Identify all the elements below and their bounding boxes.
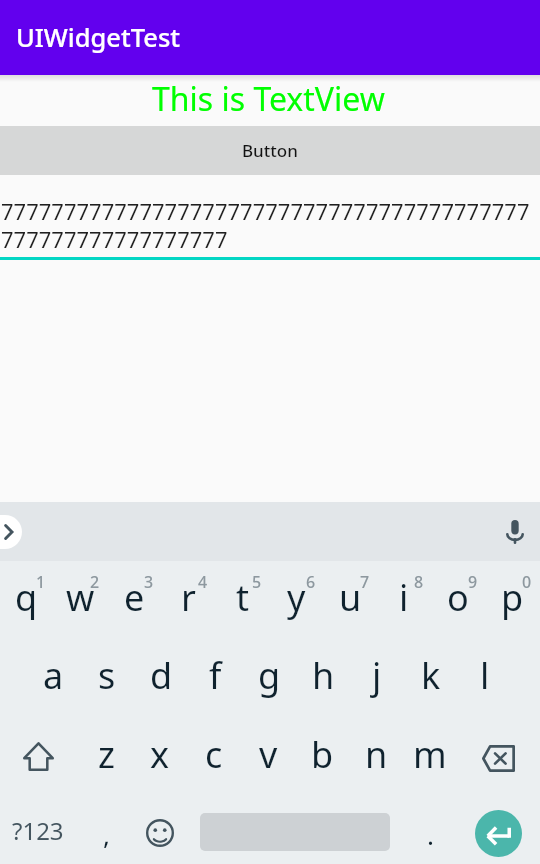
button[interactable]: 3 (108, 561, 162, 640)
staticText: h (312, 651, 335, 700)
button[interactable]: v (243, 720, 297, 800)
button[interactable]: g (243, 640, 297, 720)
staticText: t (236, 573, 249, 622)
staticText: j (372, 651, 382, 700)
staticText: Button (242, 139, 298, 162)
staticText: r (181, 573, 196, 622)
staticText: y (287, 573, 306, 622)
button[interactable]: f (189, 640, 243, 720)
button[interactable]: z (81, 720, 135, 800)
staticText: 8 (414, 571, 424, 593)
staticText: i (399, 573, 409, 622)
staticText: d (150, 651, 173, 700)
button[interactable]: 9 (432, 561, 486, 640)
button[interactable]: , (76, 800, 136, 864)
staticText: 6 (306, 571, 316, 593)
staticText: a (43, 651, 64, 700)
button[interactable]: Expand suggestions (0, 515, 22, 549)
staticText: 5 (252, 571, 262, 593)
button[interactable]: d (135, 640, 189, 720)
staticText: g (258, 651, 281, 700)
staticText: m (413, 730, 447, 779)
staticText: s (98, 651, 116, 700)
button[interactable]: Space (184, 800, 406, 864)
button[interactable]: ?123 (0, 800, 76, 864)
button[interactable]: 8 (378, 561, 432, 640)
staticText: 4 (198, 571, 208, 593)
button[interactable]: Button (0, 126, 540, 175)
button[interactable]: 0 (486, 561, 540, 640)
staticText: ?123 (12, 814, 64, 847)
button[interactable]: n (351, 720, 405, 800)
staticText: This is TextView (152, 77, 385, 121)
button[interactable]: c (189, 720, 243, 800)
button[interactable]: x (135, 720, 189, 800)
button[interactable]: a (27, 640, 81, 720)
staticText: c (205, 730, 223, 779)
staticText: b (311, 730, 334, 779)
button[interactable]: h (297, 640, 351, 720)
button[interactable]: m (405, 720, 459, 800)
staticText: 0 (522, 571, 532, 593)
staticText: UIWidgetTest (16, 20, 181, 55)
staticText: e (124, 573, 145, 622)
staticText: u (339, 573, 362, 622)
button[interactable]: j (351, 640, 405, 720)
staticText: 2 (90, 571, 100, 593)
staticText: q (15, 573, 38, 622)
staticText: f (209, 651, 222, 700)
staticText: o (447, 573, 469, 622)
button[interactable]: Enter (454, 800, 540, 864)
button[interactable]: 7777777777777777777777777777777777777777… (0, 175, 540, 260)
button[interactable]: k (405, 640, 459, 720)
button[interactable]: s (81, 640, 135, 720)
staticText: n (365, 730, 388, 779)
staticText: 3 (144, 571, 154, 593)
staticText: 7 (360, 571, 370, 593)
button[interactable]: 5 (216, 561, 270, 640)
button[interactable]: Backspace (459, 720, 540, 800)
button[interactable]: l (459, 640, 513, 720)
staticText: k (421, 651, 441, 700)
button[interactable]: 6 (270, 561, 324, 640)
staticText: w (66, 573, 95, 622)
button[interactable]: Shift (0, 720, 81, 800)
button[interactable]: Emoji (136, 800, 184, 864)
staticText: . (427, 817, 434, 852)
button[interactable]: . (406, 800, 454, 864)
button[interactable]: Voice input (495, 512, 535, 552)
staticText: x (150, 730, 170, 779)
staticText: , (103, 817, 110, 852)
button[interactable]: 1 (0, 561, 54, 640)
button[interactable]: b (297, 720, 351, 800)
staticText: v (259, 730, 278, 779)
staticText: 9 (468, 571, 478, 593)
staticText: p (501, 573, 524, 622)
staticText: l (480, 651, 490, 700)
staticText: 7777777777777777777777777777777777777777… (1, 196, 540, 254)
button[interactable]: 2 (54, 561, 108, 640)
button[interactable]: 7 (324, 561, 378, 640)
button[interactable]: UIWidgetTest (0, 0, 540, 75)
staticText: 1 (36, 571, 46, 593)
staticText: z (98, 730, 115, 779)
button[interactable]: 4 (162, 561, 216, 640)
